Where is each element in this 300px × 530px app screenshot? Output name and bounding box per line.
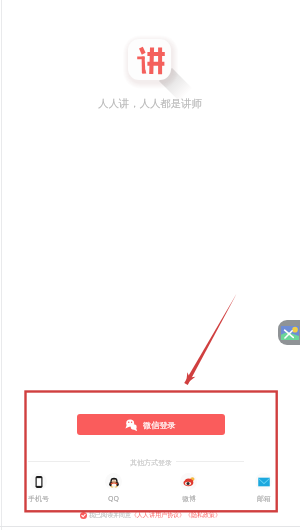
button[interactable]: Weibo login bbox=[151, 473, 226, 503]
staticText: 《人人讲用户协议》《隐私政策》 bbox=[131, 511, 221, 519]
staticText: 微信登录 bbox=[143, 420, 176, 430]
staticText: 邮箱 bbox=[257, 494, 271, 503]
button[interactable]: 微信登录 bbox=[77, 414, 225, 435]
staticText: QQ bbox=[108, 494, 119, 504]
staticText: 手机号 bbox=[28, 494, 49, 503]
staticText: 其他方式登录 bbox=[130, 458, 172, 467]
button[interactable]: Email login bbox=[226, 473, 300, 503]
staticText: 微博 bbox=[182, 494, 196, 503]
button[interactable]: QQ login bbox=[76, 473, 151, 504]
staticText: 人人讲，人人都是讲师 bbox=[98, 97, 202, 110]
button[interactable]: Phone login bbox=[1, 473, 76, 503]
staticText: 我已阅读并同意 bbox=[89, 511, 131, 519]
button[interactable]: Screenshot preview bbox=[278, 320, 300, 345]
